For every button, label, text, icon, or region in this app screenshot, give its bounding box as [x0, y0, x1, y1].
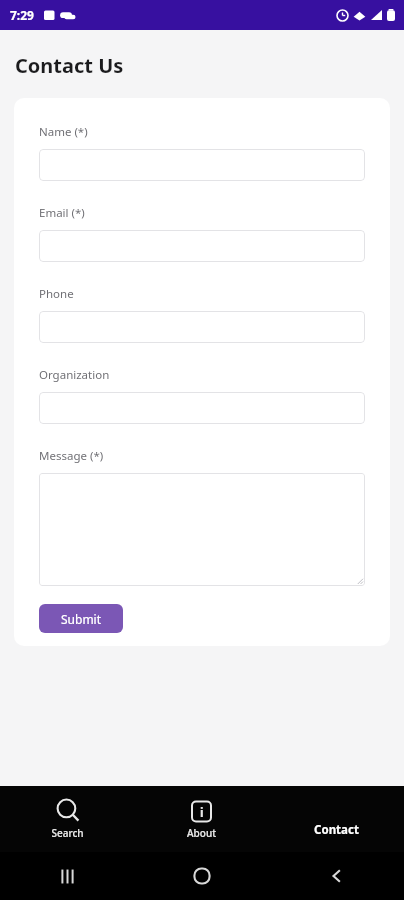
staticText: Message (*): [39, 448, 104, 464]
staticText: Contact Us: [15, 52, 124, 79]
staticText: Email (*): [39, 205, 85, 221]
button[interactable]: [39, 230, 365, 262]
staticText: Submit: [61, 611, 102, 627]
button[interactable]: i: [134, 786, 269, 852]
button[interactable]: [39, 149, 365, 181]
button[interactable]: [39, 392, 365, 424]
staticText: About: [187, 826, 216, 840]
button[interactable]: [39, 311, 365, 343]
staticText: Organization: [39, 367, 110, 383]
staticText: 7:29: [10, 7, 34, 23]
staticText: Contact: [314, 822, 359, 838]
button[interactable]: Back: [269, 852, 404, 900]
staticText: Phone: [39, 286, 74, 302]
staticText: Name (*): [39, 124, 88, 140]
button[interactable]: Search: [0, 786, 134, 852]
button[interactable]: [39, 473, 365, 586]
button[interactable]: Home: [134, 852, 269, 900]
staticText: Search: [51, 826, 84, 840]
button[interactable]: Recent apps: [0, 852, 134, 900]
staticText: i: [200, 804, 204, 820]
button[interactable]: Contact: [269, 786, 404, 852]
button[interactable]: Submit: [39, 604, 123, 633]
